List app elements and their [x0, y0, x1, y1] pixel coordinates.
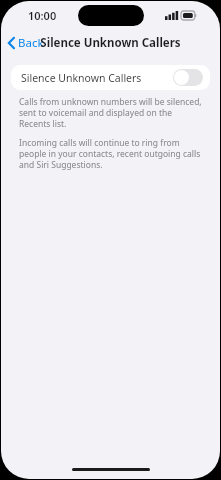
button[interactable]: Back	[1, 32, 50, 54]
staticText: 10:00	[28, 8, 57, 23]
button[interactable]: Silence Unknown Callers toggle, off	[173, 69, 203, 86]
staticText: Incoming calls will continue to ring fro…	[19, 137, 202, 170]
staticText: Silence Unknown Callers	[40, 35, 181, 51]
staticText: Back	[18, 35, 44, 51]
button[interactable]: Silence Unknown Callers	[11, 65, 210, 90]
staticText: Silence Unknown Callers	[21, 71, 173, 85]
staticText: Calls from unknown numbers will be silen…	[19, 96, 202, 129]
